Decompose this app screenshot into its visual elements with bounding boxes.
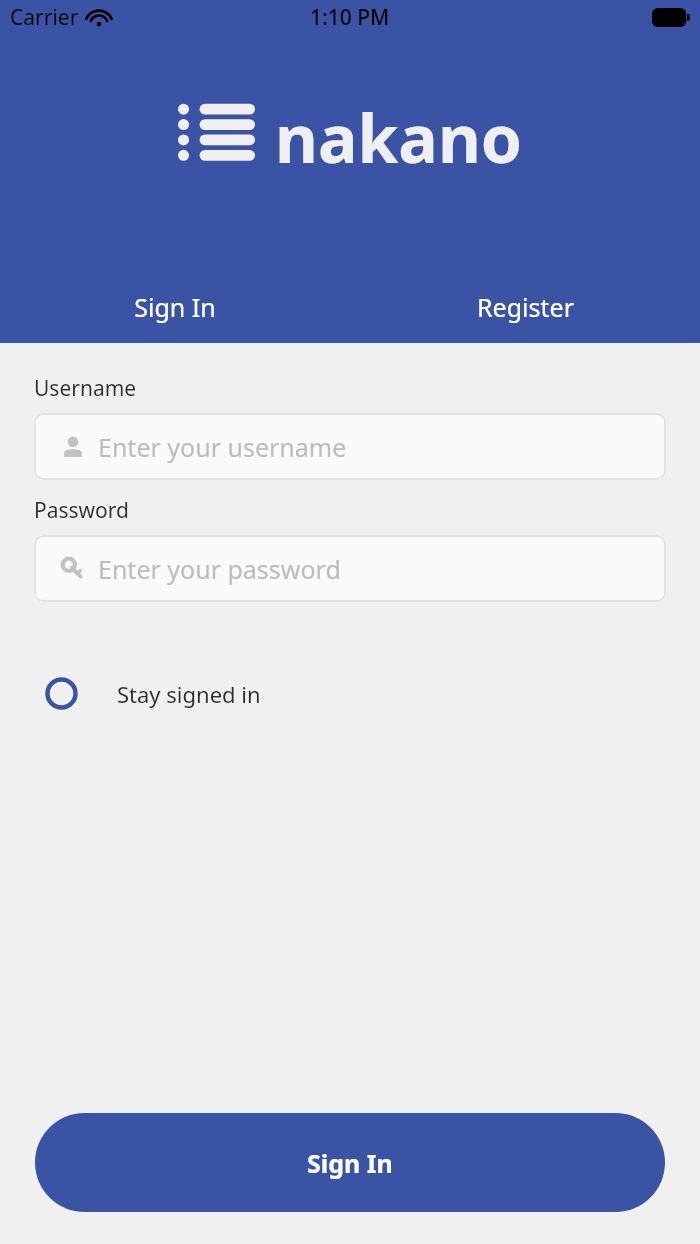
button[interactable]: Stay signed in xyxy=(0,669,700,718)
staticText: Sign In xyxy=(134,290,216,324)
button[interactable]: Enter your password xyxy=(34,535,666,602)
staticText: 1:10 PM xyxy=(310,3,390,32)
staticText: Enter your password xyxy=(98,552,341,586)
button[interactable]: Sign In xyxy=(0,276,350,338)
staticText: Username xyxy=(34,374,137,403)
staticText: Carrier xyxy=(10,3,79,32)
other: nakano logo xyxy=(178,102,255,172)
button[interactable]: Sign In xyxy=(35,1113,665,1212)
staticText: Register xyxy=(477,290,574,324)
staticText: Enter your username xyxy=(98,430,347,464)
staticText: Password xyxy=(34,496,129,525)
staticText: Stay signed in xyxy=(117,679,261,709)
staticText: Sign In xyxy=(307,1146,393,1180)
staticText: nakano xyxy=(275,92,523,182)
button[interactable]: Register xyxy=(350,276,700,338)
button[interactable]: Enter your username xyxy=(34,413,666,480)
